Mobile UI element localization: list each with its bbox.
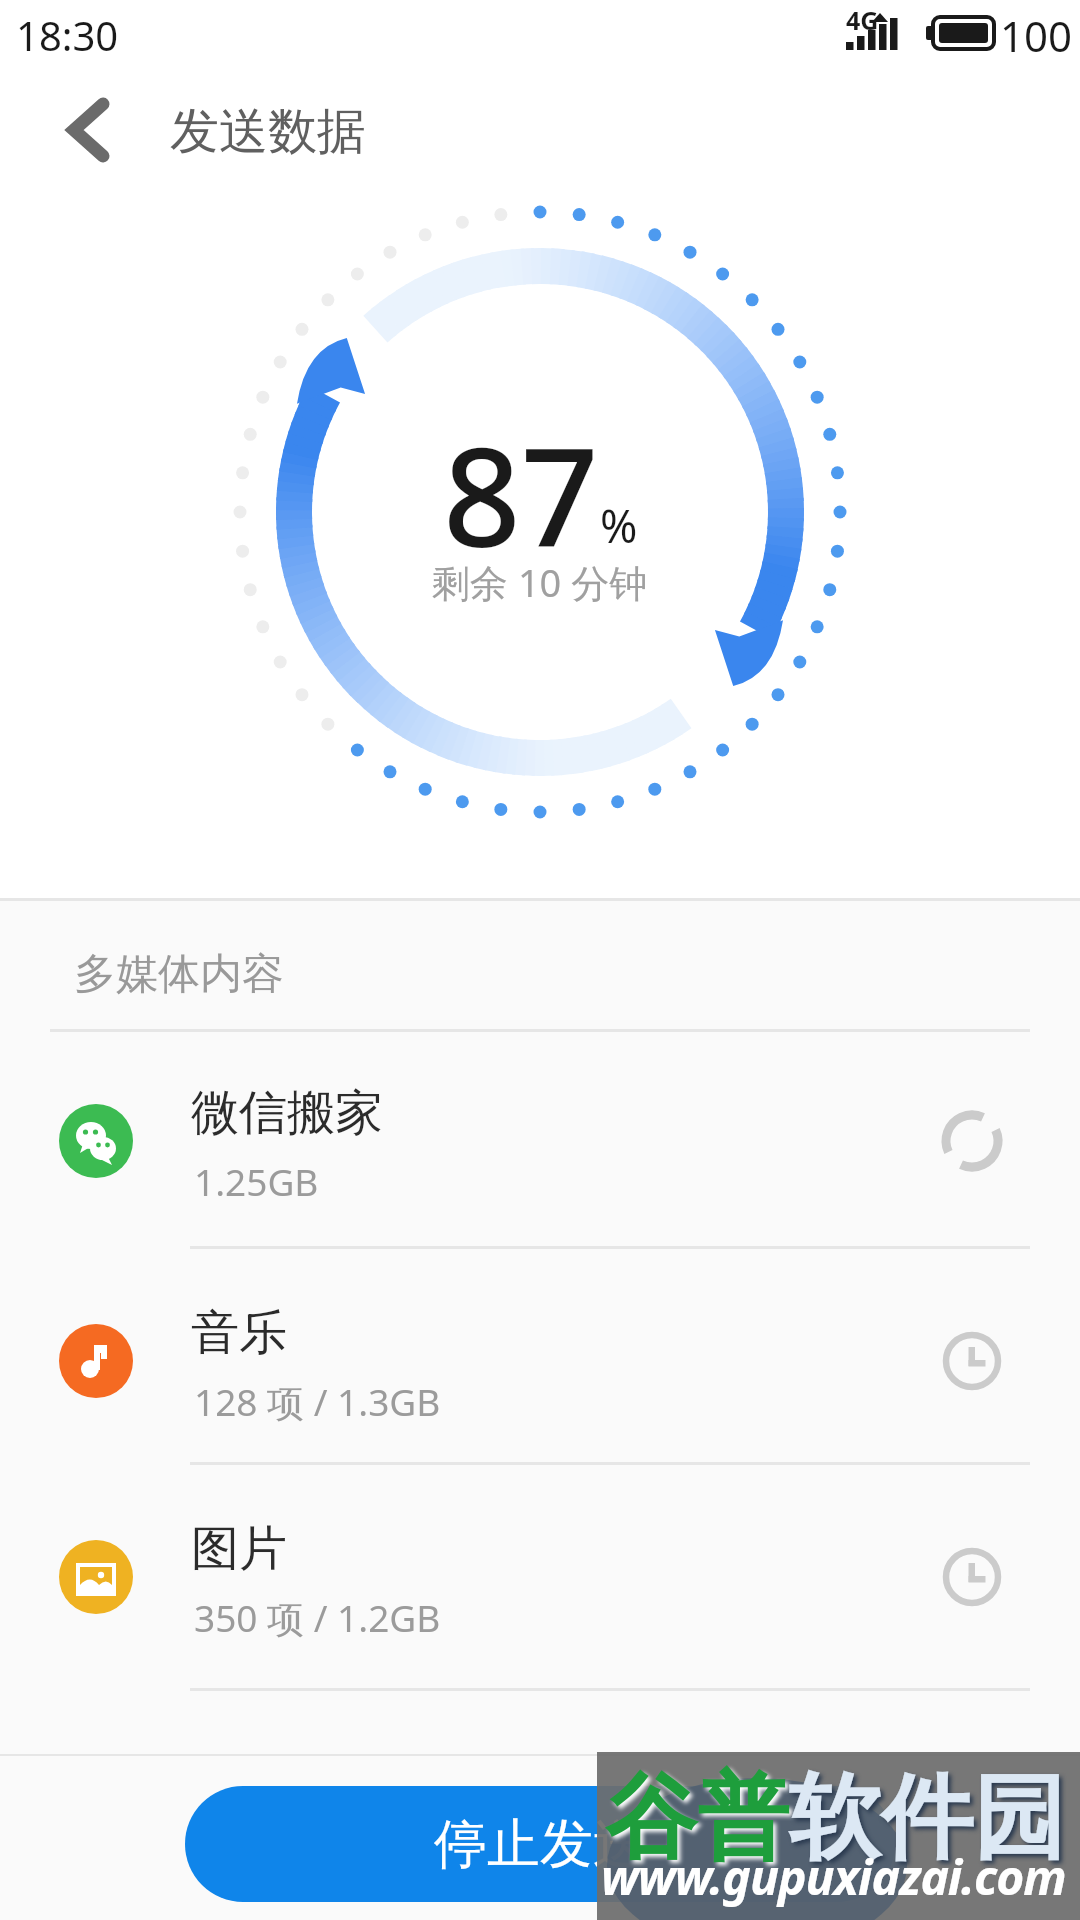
staticText: 1.25GB <box>194 1156 319 1206</box>
button[interactable]: 停止发送 <box>185 1786 895 1902</box>
staticText: 18:30 <box>16 8 119 62</box>
button[interactable] <box>40 1250 1040 1462</box>
staticText: 图片 <box>191 1519 287 1579</box>
staticText: % <box>600 495 638 556</box>
staticText: 音乐 <box>191 1303 287 1363</box>
button[interactable] <box>50 90 130 170</box>
staticText: 软件园 <box>789 1760 1065 1876</box>
staticText: 100 <box>1000 7 1073 64</box>
staticText: 350 项 / 1.2GB <box>194 1592 441 1643</box>
staticText: 4G <box>846 3 879 37</box>
staticText: 剩余 10 分钟 <box>432 556 648 608</box>
staticText: 发送数据 <box>170 101 366 163</box>
staticText: 微信搬家 <box>191 1083 383 1143</box>
button[interactable] <box>40 1466 1040 1688</box>
button[interactable] <box>40 1035 1040 1247</box>
staticText: www.gupuxiazai.com <box>601 1844 1066 1909</box>
staticText: 停止发送 <box>434 1811 646 1878</box>
staticText: 多媒体内容 <box>74 948 284 1001</box>
staticText: 87 <box>443 402 599 582</box>
staticText: 谷普 <box>605 1760 789 1876</box>
staticText: 128 项 / 1.3GB <box>194 1376 441 1427</box>
